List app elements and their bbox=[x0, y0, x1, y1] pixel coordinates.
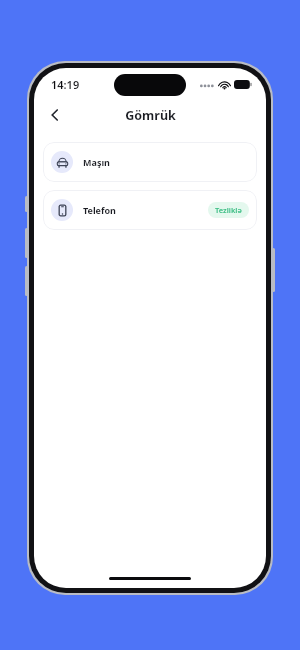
staticText: Telefon bbox=[83, 204, 116, 216]
button[interactable]: Maşın bbox=[43, 142, 257, 182]
staticText: Gömrük bbox=[125, 107, 176, 124]
staticText: Maşın bbox=[83, 156, 110, 168]
staticText: Tezliklə bbox=[215, 205, 242, 215]
staticText: 14:19 bbox=[51, 77, 80, 92]
button[interactable]: Telefon bbox=[43, 190, 257, 230]
button[interactable]: Back bbox=[40, 100, 70, 130]
